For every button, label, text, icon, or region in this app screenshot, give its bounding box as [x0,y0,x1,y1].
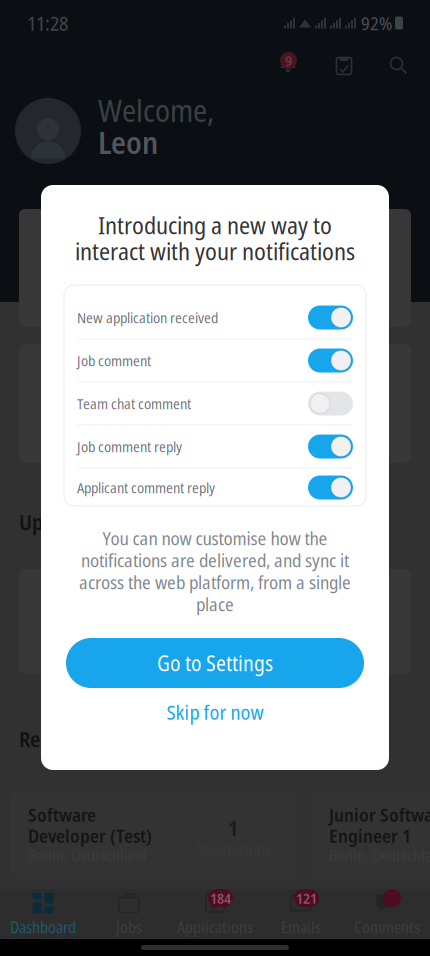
button[interactable]: Tasks [329,52,359,80]
staticText: place [196,591,234,617]
staticText: notifications are delivered, and sync it [81,547,349,573]
staticText: Applications [177,916,253,938]
button[interactable]: Notifications [274,52,304,80]
staticText: 92% [361,10,392,36]
staticText: Junior Software [329,802,430,827]
staticText: New application received [77,307,218,327]
staticText: Welcome, [98,89,214,131]
staticText [390,888,393,908]
staticText: Recent [19,724,77,754]
staticText: 1 [228,813,238,843]
button[interactable]: Search [384,52,414,80]
staticText: Skip for now [166,698,263,726]
button[interactable]: Skip for now [66,697,364,727]
staticText: Job comment reply [77,436,182,456]
button[interactable]: Applicant comment reply [64,468,366,506]
staticText: Team chat comment [77,393,191,413]
staticText: Go to Settings [157,648,273,678]
staticText: Applicant comment reply [77,477,215,497]
staticText: Upcoming [19,507,107,537]
staticText: 184 [210,888,231,908]
staticText: Emails [281,916,321,938]
staticText: 11:28 [27,9,68,37]
staticText: Introducing a new way to [98,209,332,241]
staticText: Developer (Test) [28,823,152,848]
staticText: Leon [98,121,158,163]
button[interactable]: 184 [172,886,258,942]
button[interactable]: New application received [64,296,366,338]
button[interactable]: Job comment [64,339,366,381]
staticText: Dashboard [10,916,76,938]
button[interactable] [344,886,430,942]
button[interactable]: Job comment reply [64,425,366,467]
staticText: 121 [296,888,317,908]
staticText: Engineer 1 [329,823,411,848]
button[interactable]: Jobs [86,886,172,942]
staticText: 9 [285,50,292,70]
staticText: Berlin, Deutschland [329,844,430,866]
staticText: interact with your notifications [75,235,355,267]
button[interactable]: Dashboard [0,886,86,942]
button[interactable]: Go to Settings [66,638,364,688]
staticText: Job comment [77,350,151,370]
button[interactable]: Team chat comment [64,382,366,424]
staticText: across the web platform, from a single [79,569,351,595]
staticText: You can now customise how the [102,525,327,551]
staticText: Comments [354,916,420,938]
button[interactable]: 121 [258,886,344,942]
staticText: Jobs [116,916,142,938]
staticText: Software [28,802,96,827]
